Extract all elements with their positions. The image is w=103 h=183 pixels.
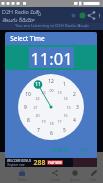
staticText: 19: [41, 119, 46, 124]
staticText: CANCEL: [50, 147, 69, 154]
button[interactable]: Twitter: [69, 11, 78, 20]
staticText: 13: [57, 90, 62, 95]
staticText: 23: [41, 90, 46, 95]
staticText: 11: [35, 81, 41, 88]
staticText: About: [70, 177, 80, 181]
staticText: 6: [50, 130, 53, 137]
staticText: 4: [73, 117, 76, 124]
staticText: 18: [49, 121, 54, 126]
button[interactable]: Social: [44, 167, 66, 183]
staticText: 11:01: [30, 47, 73, 68]
staticText: OK: [80, 147, 88, 154]
button[interactable]: OK: [77, 144, 91, 157]
staticText: 00: [49, 88, 54, 93]
button[interactable]: CANCEL: [48, 144, 71, 157]
button[interactable]: Info: [84, 167, 103, 183]
staticText: Register now: [7, 163, 25, 167]
staticText: 5: [63, 127, 66, 134]
staticText: 20: [35, 113, 40, 118]
button[interactable]: WhatsApp: [78, 11, 87, 20]
staticText: 2: [73, 91, 76, 98]
staticText: 10: [25, 91, 31, 98]
staticText: PLAY NOW: [48, 161, 62, 165]
staticText: 22: [35, 96, 40, 101]
staticText: You are Listening to D2H Radio తెలుగు: [15, 23, 89, 30]
staticText: 16: [63, 113, 68, 118]
button[interactable]: More options: [96, 12, 103, 19]
button[interactable]: About: [66, 167, 84, 183]
staticText: WELCOME BONUS: [7, 159, 31, 163]
staticText: Info: [90, 177, 97, 181]
staticText: Radio: [18, 177, 27, 181]
staticText: D2H Radio మిక్సి: [2, 8, 41, 16]
staticText: తెలుగు రేడియో: [2, 16, 35, 23]
staticText: Select Time: [10, 34, 45, 43]
staticText: 3: [76, 104, 79, 111]
staticText: 14: [63, 96, 68, 101]
button[interactable]: Share: [87, 11, 96, 20]
staticText: 8: [27, 117, 30, 124]
staticText: 12: [48, 78, 54, 85]
staticText: 1: [63, 81, 66, 88]
staticText: Social: [51, 177, 60, 181]
button[interactable]: Radio: [0, 167, 44, 183]
button[interactable]: WELCOME BONUS: [5, 158, 97, 167]
staticText: 288: [33, 158, 46, 167]
staticText: 17: [57, 119, 62, 124]
staticText: 21: [33, 105, 38, 110]
staticText: 9: [24, 104, 27, 111]
staticText: 7: [37, 127, 40, 134]
staticText: 15: [66, 105, 71, 110]
